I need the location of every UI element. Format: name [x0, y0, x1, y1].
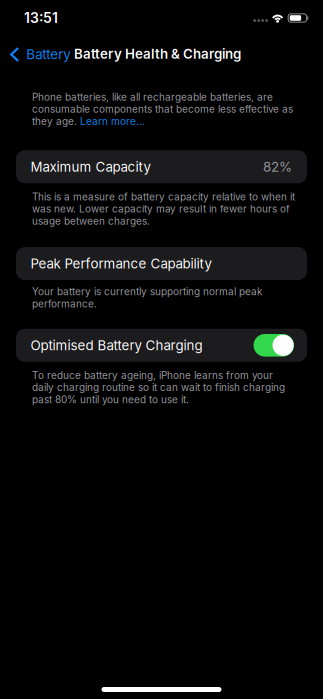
staticText: Phone batteries, like all rechargeable b…	[32, 91, 293, 127]
staticText: Your battery is currently supporting nor…	[32, 286, 262, 310]
staticText: To reduce battery ageing, iPhone learns …	[32, 369, 285, 406]
staticText: 13:51	[24, 9, 58, 26]
button[interactable]: Back to Battery	[0, 36, 80, 66]
button[interactable]: Peak Performance Capability	[16, 247, 307, 280]
button[interactable]: Maximum Capacity	[16, 150, 307, 183]
staticText: Maximum Capacity	[30, 159, 150, 175]
staticText: 82%	[263, 159, 292, 175]
staticText: Optimised Battery Charging	[30, 337, 202, 353]
staticText: This is a measure of battery capacity re…	[32, 191, 295, 227]
button[interactable]: Optimised Battery Charging	[16, 329, 307, 362]
staticText: Peak Performance Capability	[30, 255, 211, 272]
staticText: Battery Health & Charging	[74, 46, 241, 62]
staticText: Battery	[26, 46, 70, 62]
